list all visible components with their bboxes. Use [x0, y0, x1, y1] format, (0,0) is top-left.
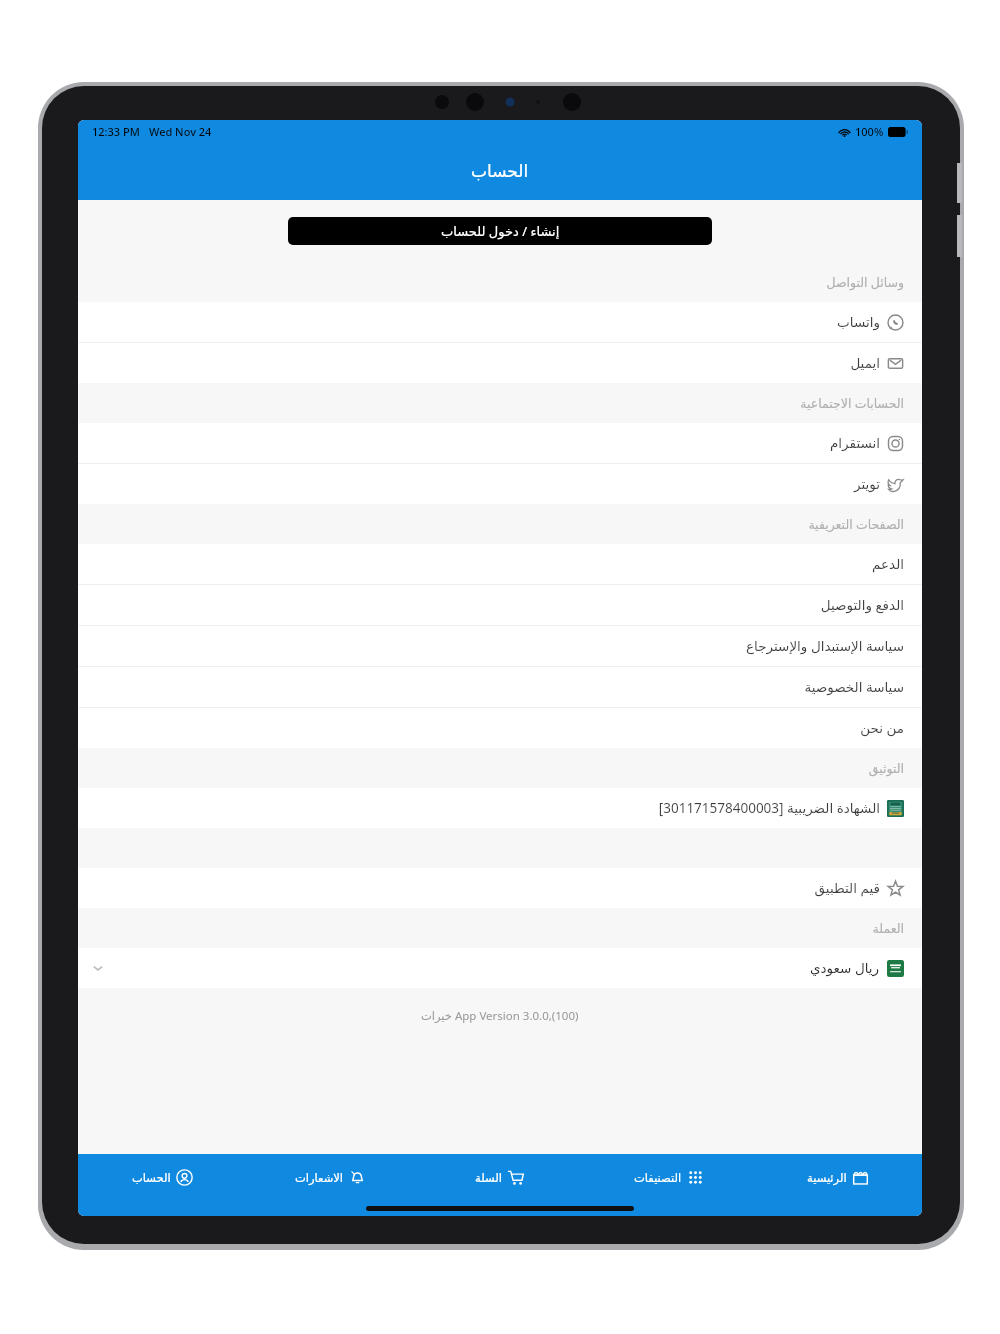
staticText: الرئيسية — [807, 1171, 847, 1184]
button[interactable]: التصنيفات — [584, 1154, 753, 1200]
staticText: واتساب — [837, 314, 880, 330]
staticText: التصنيفات — [634, 1171, 682, 1184]
staticText: ريال سعودي — [810, 959, 880, 977]
staticText: سياسة الخصوصية — [804, 678, 904, 696]
staticText: تويتر — [853, 476, 880, 492]
button[interactable]: قيم التطبيق — [78, 868, 922, 908]
staticText: انستقرام — [829, 435, 880, 451]
button[interactable]: سياسة الخصوصية — [78, 667, 922, 707]
staticText: 12:33 PM — [92, 124, 140, 139]
button[interactable]: الرئيسية — [753, 1154, 922, 1200]
button[interactable]: سياسة الإستبدال والإسترجاع — [78, 626, 922, 666]
staticText: الدعم — [872, 556, 904, 572]
button[interactable]: السلة — [415, 1154, 584, 1200]
staticText: الدفع والتوصيل — [820, 596, 904, 614]
staticText: الاشعارات — [295, 1171, 344, 1184]
button[interactable]: واتساب — [78, 302, 922, 342]
staticText: خيرات App Version 3.0.0,(100) — [421, 1008, 579, 1024]
staticText: الشهادة الضريبية [301171578400003] — [658, 799, 880, 817]
button[interactable]: من نحن — [78, 708, 922, 748]
button[interactable]: ايميل — [78, 343, 922, 383]
staticText: من نحن — [860, 719, 904, 737]
button[interactable]: ريال سعودي — [78, 948, 922, 988]
staticText: قيم التطبيق — [814, 879, 880, 897]
button[interactable]: تويتر — [78, 464, 922, 504]
staticText: Wed Nov 24 — [149, 124, 212, 139]
staticText: السلة — [475, 1171, 502, 1184]
staticText: إنشاء / دخول للحساب — [441, 222, 560, 240]
staticText: ايميل — [850, 355, 880, 371]
button[interactable]: الاشعارات — [246, 1154, 415, 1200]
staticText: الصفحات التعريفية — [808, 516, 904, 533]
button[interactable]: الدعم — [78, 544, 922, 584]
staticText: العملة — [872, 921, 904, 936]
staticText: 100% — [855, 124, 884, 139]
staticText: وسائل التواصل — [826, 274, 904, 291]
button[interactable]: انستقرام — [78, 423, 922, 463]
staticText: الحساب — [471, 161, 529, 181]
staticText: الحسابات الاجتماعية — [800, 395, 904, 412]
button[interactable]: الشهادة الضريبية [301171578400003] — [78, 788, 922, 828]
staticText: التوثيق — [868, 761, 904, 776]
button[interactable]: الحساب — [78, 1154, 246, 1200]
button[interactable]: إنشاء / دخول للحساب — [288, 217, 712, 245]
staticText: الحساب — [132, 1171, 171, 1184]
staticText: سياسة الإستبدال والإسترجاع — [746, 637, 904, 655]
button[interactable]: الدفع والتوصيل — [78, 585, 922, 625]
